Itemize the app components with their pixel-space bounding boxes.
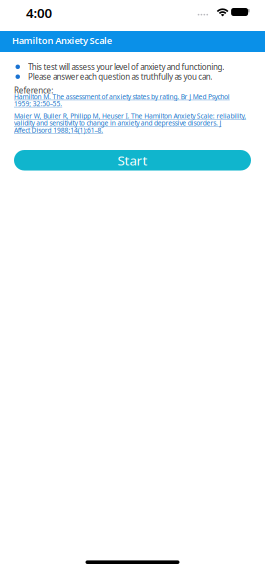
- staticText: validity and sensitivity to change in an…: [14, 118, 222, 127]
- staticText: Start: [117, 151, 147, 169]
- staticText: Maier W, Buller R, Philipp M, Heuser I. …: [14, 111, 246, 120]
- staticText: This test will assess your level of anxi…: [28, 61, 224, 72]
- staticText: Reference:: [14, 85, 53, 96]
- button[interactable]: Maier W, Buller R, Philipp M, Heuser I. …: [14, 112, 246, 134]
- staticText: 1959; 32:50–55.: [14, 99, 62, 108]
- staticText: Hamilton Anxiety Scale: [12, 34, 112, 47]
- button[interactable]: Start: [14, 150, 251, 170]
- staticText: 4:00: [26, 4, 52, 22]
- staticText: Affect Disord 1988;14(1):61–8.: [14, 126, 103, 134]
- button[interactable]: Hamilton M. The assessment of anxiety st…: [14, 93, 230, 107]
- staticText: Hamilton M. The assessment of anxiety st…: [14, 92, 230, 101]
- staticText: Please answer each question as truthfull…: [28, 71, 212, 82]
